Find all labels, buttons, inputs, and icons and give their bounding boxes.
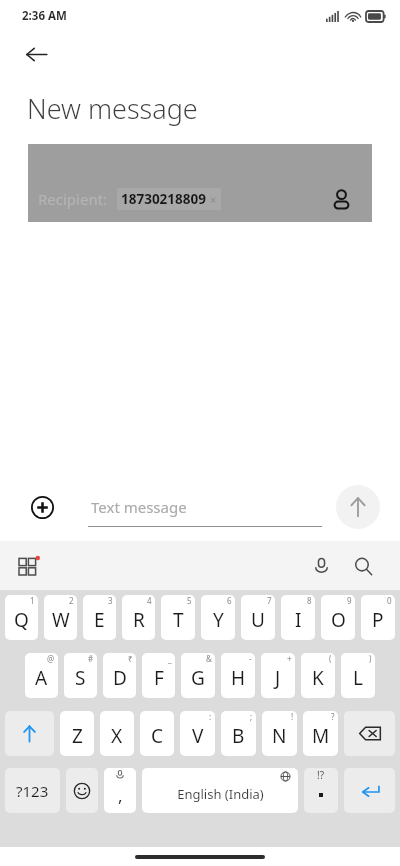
- button[interactable]: N: [262, 711, 297, 756]
- staticText: 7: [267, 595, 272, 606]
- button[interactable]: Recipient:: [28, 144, 372, 222]
- button[interactable]: Send: [336, 485, 380, 529]
- button[interactable]: Voice input: [302, 547, 340, 585]
- staticText: W: [52, 607, 70, 633]
- button[interactable]: P: [361, 595, 395, 640]
- button[interactable]: Shift: [5, 711, 54, 756]
- staticText: ,: [118, 784, 123, 807]
- staticText: L: [353, 665, 363, 691]
- button[interactable]: L: [341, 653, 375, 698]
- button[interactable]: U: [241, 595, 275, 640]
- staticText: K: [312, 665, 324, 691]
- staticText: 9: [347, 595, 352, 606]
- button[interactable]: Backspace: [344, 711, 395, 756]
- staticText: !?: [317, 768, 325, 782]
- staticText: &: [206, 653, 212, 664]
- button[interactable]: Search: [344, 547, 382, 585]
- staticText: S: [75, 665, 86, 691]
- staticText: -: [249, 653, 252, 664]
- button[interactable]: T: [161, 595, 195, 640]
- staticText: M: [312, 723, 330, 749]
- staticText: 0: [387, 595, 392, 606]
- button[interactable]: Q: [5, 595, 38, 640]
- button[interactable]: H: [221, 653, 255, 698]
- staticText: 18730218809: [121, 190, 206, 208]
- button[interactable]: Enter: [344, 768, 395, 813]
- button[interactable]: S: [64, 653, 97, 698]
- staticText: 5: [187, 595, 192, 606]
- button[interactable]: R: [122, 595, 155, 640]
- staticText: ?: [331, 711, 335, 722]
- staticText: O: [331, 607, 346, 633]
- button[interactable]: Back: [14, 32, 58, 76]
- staticText: 1: [30, 595, 35, 606]
- staticText: A: [35, 665, 48, 691]
- staticText: ?123: [16, 781, 49, 801]
- staticText: Text message: [91, 497, 187, 517]
- button[interactable]: ,: [104, 768, 136, 813]
- staticText: Z: [72, 723, 83, 749]
- button[interactable]: O: [321, 595, 355, 640]
- button[interactable]: W: [44, 595, 77, 640]
- staticText: P: [372, 607, 384, 633]
- button[interactable]: English (India): [142, 768, 298, 813]
- staticText: 6: [227, 595, 232, 606]
- staticText: (: [329, 653, 332, 664]
- button[interactable]: G: [181, 653, 215, 698]
- button[interactable]: Contacts: [324, 182, 358, 216]
- button[interactable]: A: [25, 653, 58, 698]
- staticText: B: [232, 723, 245, 749]
- button[interactable]: K: [301, 653, 335, 698]
- staticText: 3: [108, 595, 113, 606]
- staticText: _: [168, 653, 172, 664]
- button[interactable]: X: [100, 711, 134, 756]
- button[interactable]: C: [140, 711, 174, 756]
- button[interactable]: !?: [304, 768, 338, 813]
- button[interactable]: M: [303, 711, 338, 756]
- staticText: New message: [27, 90, 198, 127]
- staticText: ;: [250, 711, 253, 722]
- button[interactable]: I: [281, 595, 315, 640]
- staticText: I: [295, 607, 302, 633]
- staticText: #: [88, 653, 94, 664]
- staticText: ): [369, 653, 372, 664]
- staticText: :: [209, 711, 212, 722]
- button[interactable]: Emoji: [66, 768, 98, 813]
- staticText: !: [291, 711, 294, 722]
- button[interactable]: ?123: [5, 768, 60, 813]
- staticText: N: [272, 723, 287, 749]
- staticText: 8: [307, 595, 312, 606]
- button[interactable]: J: [261, 653, 295, 698]
- button[interactable]: D: [103, 653, 136, 698]
- staticText: 4: [147, 595, 152, 606]
- staticText: ₹: [128, 653, 133, 664]
- button[interactable]: Toolbar: [10, 547, 48, 585]
- button[interactable]: B: [221, 711, 256, 756]
- staticText: C: [151, 723, 164, 749]
- staticText: X: [111, 723, 123, 749]
- button[interactable]: F: [142, 653, 175, 698]
- staticText: V: [192, 723, 204, 749]
- staticText: H: [231, 665, 246, 691]
- staticText: @: [47, 653, 55, 664]
- button[interactable]: Z: [60, 711, 94, 756]
- staticText: 2:36 AM: [22, 8, 67, 24]
- staticText: ×: [210, 192, 217, 207]
- button[interactable]: Y: [201, 595, 235, 640]
- staticText: G: [191, 665, 205, 691]
- staticText: +: [287, 653, 292, 664]
- staticText: F: [154, 665, 164, 691]
- button[interactable]: E: [83, 595, 116, 640]
- staticText: Y: [213, 607, 224, 633]
- staticText: J: [275, 665, 281, 691]
- button[interactable]: Text message: [88, 487, 322, 527]
- staticText: 2: [69, 595, 74, 606]
- button[interactable]: Attach: [20, 485, 64, 529]
- button[interactable]: V: [180, 711, 215, 756]
- staticText: Recipient:: [38, 189, 108, 209]
- staticText: Q: [14, 607, 29, 633]
- staticText: English (India): [177, 785, 264, 803]
- staticText: T: [173, 607, 184, 633]
- staticText: U: [251, 607, 265, 633]
- staticText: D: [113, 665, 127, 691]
